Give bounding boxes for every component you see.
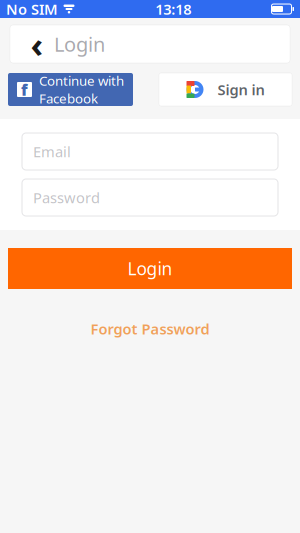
button[interactable]: Forgot Password: [76, 313, 223, 344]
button[interactable]: f: [8, 73, 133, 106]
staticText: Login: [127, 257, 172, 280]
button[interactable]: Email: [22, 133, 278, 170]
button[interactable]: Sign in: [159, 73, 292, 106]
button[interactable]: Back: [20, 25, 54, 63]
staticText: Forgot Password: [90, 319, 209, 338]
staticText: 13:18: [155, 0, 191, 19]
staticText: Login: [54, 31, 105, 57]
staticText: f: [21, 79, 28, 100]
staticText: ‹: [30, 21, 43, 67]
staticText: Continue with Facebook: [39, 72, 124, 107]
staticText: Password: [33, 188, 100, 207]
staticText: Email: [33, 142, 71, 161]
staticText: No SIM: [6, 0, 58, 19]
staticText: Sign in: [217, 80, 264, 99]
button[interactable]: Login: [8, 248, 292, 289]
button[interactable]: Password: [22, 179, 278, 216]
